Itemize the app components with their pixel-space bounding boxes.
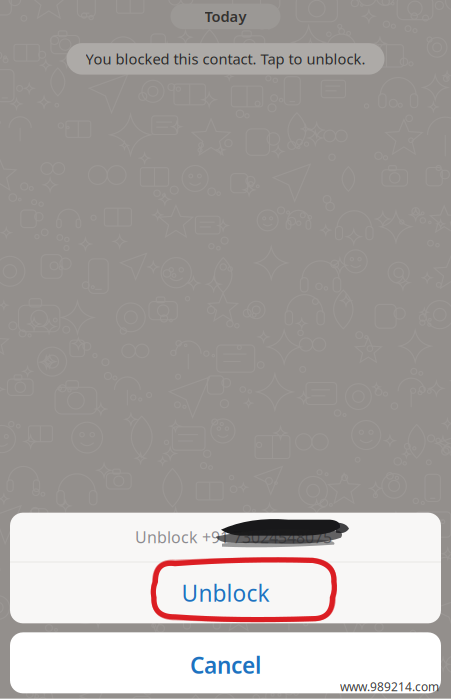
button[interactable]: You blocked this contact. Tap to unblock…: [66, 43, 384, 75]
staticText: Unblock +91 73024548075: [135, 526, 332, 548]
button[interactable]: Unblock: [10, 562, 441, 623]
staticText: You blocked this contact. Tap to unblock…: [85, 49, 365, 69]
staticText: Cancel: [190, 650, 261, 680]
staticText: Unblock: [181, 578, 269, 608]
button[interactable]: Cancel: [10, 632, 441, 693]
staticText: www.989214.com: [340, 679, 439, 695]
staticText: Today: [204, 7, 246, 26]
